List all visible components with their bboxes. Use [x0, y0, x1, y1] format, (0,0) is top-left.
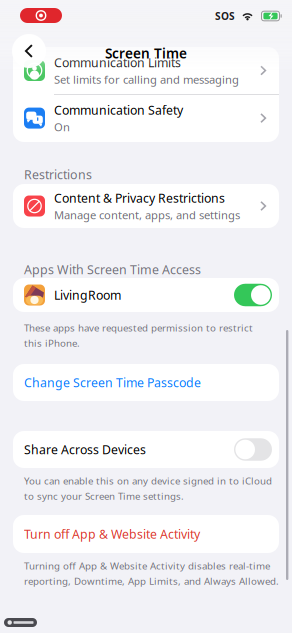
button[interactable]: Back	[12, 34, 46, 68]
button[interactable]: Turn off App & Website Activity	[13, 515, 279, 553]
staticText: Communication Limits	[54, 54, 181, 71]
staticText: On	[54, 119, 70, 135]
button[interactable]: Communication Safety	[13, 95, 279, 142]
staticText: Set limits for calling and messaging	[54, 72, 239, 87]
staticText: Apps With Screen Time Access	[24, 261, 201, 278]
button[interactable]: Content & Privacy Restrictions	[13, 184, 279, 228]
staticText: Turn off App & Website Activity	[24, 526, 200, 542]
staticText: Share Across Devices	[24, 441, 146, 458]
staticText: Screen Time	[105, 44, 187, 62]
staticText: You can enable this on any device signed…	[24, 474, 272, 487]
staticText: These apps have requested permission to …	[24, 321, 253, 334]
staticText: Manage content, apps, and settings	[54, 207, 240, 222]
staticText: to sync your Screen Time settings.	[24, 489, 184, 503]
staticText: SOS	[215, 9, 235, 23]
staticText: Change Screen Time Passcode	[24, 374, 201, 391]
staticText: reporting, Downtime, App Limits, and Alw…	[24, 574, 279, 588]
staticText: LivingRoom	[54, 287, 121, 303]
staticText: Content & Privacy Restrictions	[54, 189, 225, 206]
button[interactable]: Communication Limits	[13, 47, 279, 94]
staticText: this iPhone.	[24, 336, 80, 350]
button[interactable]: LivingRoom	[13, 278, 279, 312]
button[interactable]: Change Screen Time Passcode	[13, 364, 279, 401]
staticText: Communication Safety	[54, 102, 183, 118]
staticText: Turning off App & Website Activity disab…	[24, 559, 270, 572]
staticText: Restrictions	[24, 166, 92, 183]
